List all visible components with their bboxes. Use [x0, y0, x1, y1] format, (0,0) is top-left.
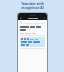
staticText: recognition AI	[21, 6, 44, 10]
button[interactable]	[20, 37, 45, 47]
staticText: Translate with	[21, 2, 44, 6]
button[interactable]: Back	[19, 17, 22, 20]
staticText: Translate	[28, 17, 38, 20]
button[interactable]: More options	[43, 17, 46, 20]
